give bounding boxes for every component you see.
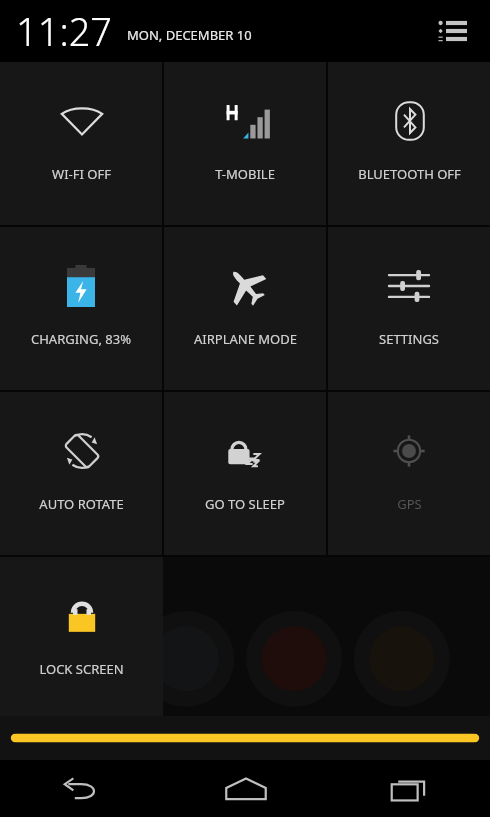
button[interactable]: Back [0,760,164,817]
button[interactable]: Home [164,760,327,817]
button[interactable]: T-MOBILE [164,62,326,225]
button[interactable]: BLUETOOTH OFF [328,62,490,225]
staticText: BLUETOOTH OFF [358,165,461,183]
button[interactable]: GO TO SLEEP [164,392,326,555]
staticText: GPS [397,495,422,513]
staticText: MON, DECEMBER 10 [127,26,252,44]
button[interactable]: AUTO ROTATE [0,392,162,555]
staticText: WI-FI OFF [52,165,111,183]
staticText: SETTINGS [379,330,439,348]
staticText: T-MOBILE [215,165,275,183]
button[interactable]: CHARGING, 83% [0,227,162,390]
staticText: CHARGING, 83% [31,330,131,348]
staticText: AUTO ROTATE [39,495,124,513]
staticText: 11:27 [16,5,113,57]
button[interactable]: Settings list [432,11,472,51]
button[interactable]: WI-FI OFF [0,62,162,225]
button[interactable]: Brightness [0,716,490,760]
button[interactable]: LOCK SCREEN [0,557,163,720]
staticText: AIRPLANE MODE [194,330,297,348]
button[interactable]: Recents [327,760,490,817]
staticText: LOCK SCREEN [39,660,124,678]
staticText: GO TO SLEEP [205,495,285,513]
button[interactable]: AIRPLANE MODE [164,227,326,390]
button[interactable]: SETTINGS [328,227,490,390]
button[interactable]: GPS [328,392,490,555]
